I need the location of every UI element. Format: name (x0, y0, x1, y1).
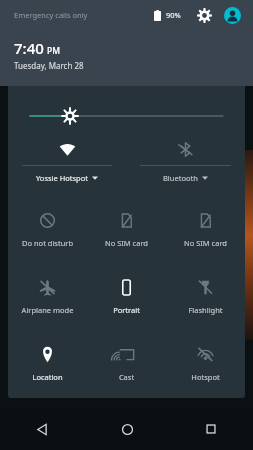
button[interactable]: Yossie Hotspot (8, 134, 126, 188)
staticText: Tuesday, March 28 (14, 60, 84, 71)
button[interactable]: User profile (221, 4, 243, 26)
staticText: Portrait (87, 305, 166, 315)
staticText: 90% (166, 10, 181, 20)
staticText: Emergency calls only (14, 10, 88, 20)
button[interactable]: Settings (193, 4, 215, 26)
staticText: Yossie Hotspot (36, 173, 88, 183)
staticText: Do not disturb (8, 238, 87, 248)
button[interactable]: Hotspot (166, 330, 245, 397)
button[interactable]: No SIM card (166, 196, 245, 263)
staticText: Location (8, 372, 87, 382)
button[interactable]: Brightness (8, 100, 245, 130)
button[interactable]: Back (0, 408, 85, 450)
staticText: 7:40 (14, 38, 44, 58)
staticText: Bluetooth (163, 173, 198, 183)
staticText: Airplane mode (8, 305, 87, 315)
button[interactable]: Do not disturb (8, 196, 87, 263)
button[interactable]: Home (85, 408, 169, 450)
button[interactable]: Recent apps (169, 408, 253, 450)
staticText: Flashlight (166, 305, 245, 315)
button[interactable]: Cast (87, 330, 166, 397)
staticText: No SIM card (166, 238, 245, 248)
staticText: PM (47, 45, 60, 57)
button[interactable]: Airplane mode (8, 263, 87, 330)
staticText: No SIM card (87, 238, 166, 248)
button[interactable]: Location (8, 330, 87, 397)
button[interactable]: No SIM card (87, 196, 166, 263)
staticText: Hotspot (166, 372, 245, 382)
staticText: Cast (87, 372, 166, 382)
button[interactable]: Bluetooth (126, 134, 245, 188)
button[interactable]: Portrait (87, 263, 166, 330)
button[interactable]: Flashlight (166, 263, 245, 330)
